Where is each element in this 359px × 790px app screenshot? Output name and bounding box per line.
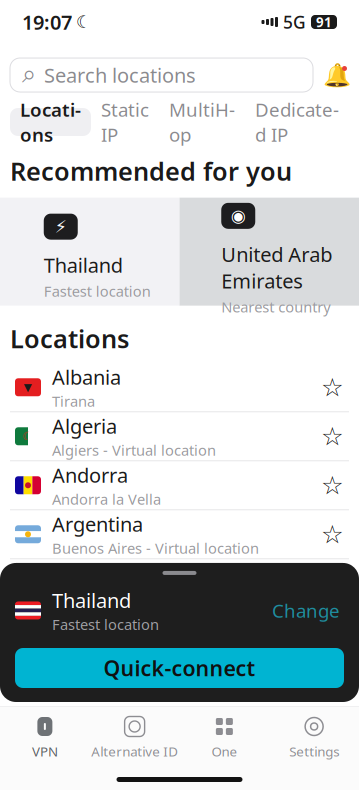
staticText: MultiHop bbox=[169, 97, 235, 147]
staticText: Albania bbox=[52, 364, 121, 390]
button[interactable]: Armenia bbox=[0, 559, 359, 607]
button[interactable]: Settings bbox=[269, 715, 359, 760]
staticText: ☾ bbox=[22, 429, 33, 443]
staticText: ☾ bbox=[76, 12, 92, 32]
staticText: Andorra bbox=[52, 462, 128, 488]
staticText: Nearest country bbox=[221, 297, 330, 316]
staticText: One bbox=[211, 742, 237, 760]
button[interactable]: Argentina bbox=[0, 510, 359, 558]
staticText: Algiers - Virtual location bbox=[52, 440, 216, 460]
button[interactable]: Notifications bbox=[325, 60, 349, 90]
button[interactable]: ☾ bbox=[0, 412, 359, 460]
staticText: 5G bbox=[283, 10, 306, 33]
button[interactable]: One bbox=[179, 715, 269, 760]
staticText: Austria bbox=[52, 609, 118, 635]
staticText: 🔔 bbox=[323, 62, 351, 88]
button[interactable]: Alternative ID bbox=[90, 715, 180, 760]
button[interactable]: ▼ bbox=[0, 363, 359, 411]
staticText: VPN bbox=[32, 742, 58, 760]
staticText: Static IP bbox=[101, 97, 149, 147]
button[interactable]: Dedicated IP bbox=[245, 108, 349, 136]
staticText: ☆ bbox=[321, 422, 344, 451]
staticText: Locations bbox=[20, 97, 81, 147]
button[interactable]: ◉ bbox=[179, 198, 359, 306]
staticText: ◉ bbox=[231, 206, 246, 226]
staticText: ⚡︎ bbox=[55, 217, 67, 236]
staticText: ☆ bbox=[321, 618, 344, 647]
staticText: Tirana bbox=[52, 391, 95, 411]
staticText: Search locations bbox=[44, 62, 196, 88]
staticText: Settings bbox=[289, 742, 339, 760]
staticText: Recommended for you bbox=[10, 154, 292, 188]
staticText: Quick-connect bbox=[103, 654, 255, 682]
staticText: Alternative ID bbox=[91, 742, 178, 760]
button[interactable]: Andorra bbox=[0, 461, 359, 509]
staticText: Locations bbox=[10, 322, 129, 355]
staticText: Thailand bbox=[44, 252, 123, 278]
staticText: 19:07 bbox=[22, 9, 72, 35]
staticText: ☆ bbox=[321, 471, 344, 500]
staticText: Vienna bbox=[52, 636, 99, 656]
button[interactable]: MultiHop bbox=[159, 108, 245, 136]
button[interactable]: Quick-connect bbox=[15, 648, 344, 688]
staticText: ▼ bbox=[24, 381, 32, 393]
staticText: 91 bbox=[316, 13, 332, 31]
button[interactable]: Locations bbox=[10, 108, 91, 136]
staticText: Yerevan bbox=[52, 587, 106, 607]
staticText: Fastest location bbox=[44, 281, 151, 301]
staticText: United Arab Emirates bbox=[221, 241, 332, 294]
button[interactable]: Austria bbox=[0, 608, 359, 656]
staticText: ⌕ bbox=[22, 63, 36, 87]
button[interactable]: VPN bbox=[0, 715, 90, 760]
staticText: ☆ bbox=[321, 373, 344, 402]
staticText: Andorra la Vella bbox=[52, 489, 161, 509]
staticText: Buenos Aires - Virtual location bbox=[52, 538, 259, 558]
button[interactable]: ⌕ bbox=[10, 58, 313, 92]
staticText: Dedicated IP bbox=[255, 97, 339, 147]
button[interactable]: ⚡︎ bbox=[0, 198, 179, 306]
staticText: Thailand bbox=[52, 587, 131, 614]
staticText: Change bbox=[272, 598, 340, 623]
staticText: ☆ bbox=[321, 520, 344, 549]
button[interactable]: Change bbox=[268, 592, 344, 629]
staticText: Argentina bbox=[52, 511, 143, 537]
staticText: Armenia bbox=[52, 560, 131, 586]
staticText: Algeria bbox=[52, 413, 117, 439]
staticText: Fastest location bbox=[52, 614, 159, 634]
button[interactable]: Static IP bbox=[91, 108, 159, 136]
